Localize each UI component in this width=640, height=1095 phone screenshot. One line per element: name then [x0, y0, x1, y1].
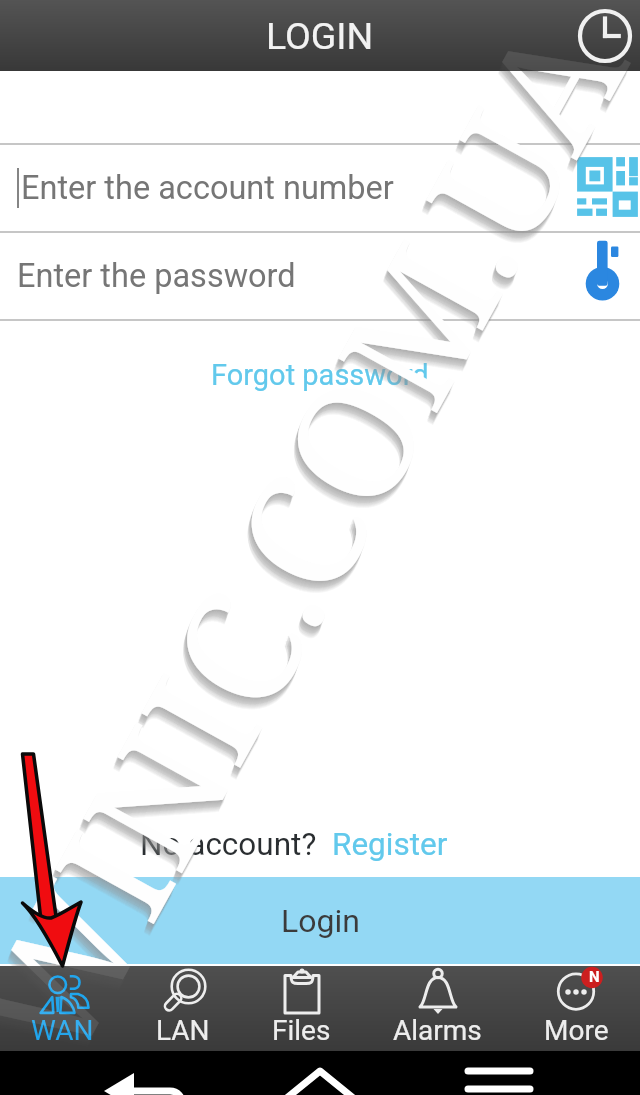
staticText: WINIC.COM.UA: [0, 0, 640, 1095]
staticText: WINIC.COM.UA: [0, 0, 640, 1095]
staticText: Enter the account number: [21, 169, 394, 207]
staticText: WINIC.COM.UA: [0, 0, 640, 1095]
staticText: WINIC.COM.UA: [0, 71, 640, 966]
staticText: WINIC.COM.UA: [0, 0, 640, 1095]
staticText: WINIC.COM.UA: [0, 0, 640, 1095]
staticText: Register: [332, 826, 448, 863]
staticText: WINIC.COM.UA: [0, 71, 640, 966]
staticText: WINIC.COM.UA: [0, 0, 640, 1095]
staticText: WINIC.COM.UA: [0, 71, 640, 966]
staticText: WINIC.COM.UA: [0, 0, 640, 1095]
staticText: Files: [272, 1014, 331, 1047]
staticText: WINIC.COM.UA: [0, 71, 640, 966]
button[interactable]: Enter the password: [0, 233, 640, 319]
button[interactable]: N: [544, 966, 609, 1051]
staticText: WINIC.COM.UA: [0, 71, 640, 966]
staticText: WINIC.COM.UA: [0, 71, 640, 966]
staticText: N: [589, 968, 600, 986]
staticText: WINIC.COM.UA: [0, 0, 640, 1095]
staticText: Login: [281, 902, 360, 940]
staticText: WINIC.COM.UA: [0, 71, 640, 966]
staticText: WINIC.COM.UA: [0, 71, 640, 966]
staticText: WAN: [31, 1014, 94, 1047]
staticText: WINIC.COM.UA: [0, 0, 640, 1095]
button[interactable]: Files: [272, 966, 331, 1051]
staticText: WINIC.COM.UA: [0, 71, 640, 966]
staticText: WINIC.COM.UA: [0, 71, 640, 966]
staticText: No account?: [140, 826, 317, 863]
button[interactable]: Forgot password: [203, 354, 437, 396]
staticText: Alarms: [393, 1014, 482, 1047]
staticText: Enter the password: [17, 257, 296, 295]
staticText: WINIC.COM.UA: [0, 0, 640, 1095]
staticText: Forgot password: [211, 358, 429, 392]
staticText: WINIC.COM.UA: [0, 0, 640, 1095]
button[interactable]: History: [574, 5, 636, 67]
staticText: WINIC.COM.UA: [0, 71, 640, 966]
button[interactable]: Alarms: [393, 966, 482, 1051]
staticText: WINIC.COM.UA: [0, 71, 640, 966]
staticText: LOGIN: [266, 14, 374, 58]
staticText: WINIC.COM.UA: [0, 0, 640, 1095]
staticText: WINIC.COM.UA: [0, 0, 640, 1095]
button[interactable]: Login: [0, 877, 640, 964]
button[interactable]: Register: [332, 826, 448, 863]
staticText: More: [544, 1014, 609, 1047]
button[interactable]: WAN: [31, 966, 94, 1051]
staticText: WINIC.COM.UA: [0, 0, 640, 1095]
staticText: WINIC.COM.UA: [0, 0, 640, 1095]
staticText: WINIC.COM.UA: [0, 71, 640, 966]
button[interactable]: Enter the account number: [0, 145, 640, 231]
staticText: WINIC.COM.UA: [0, 71, 640, 966]
staticText: LAN: [156, 1014, 210, 1047]
button[interactable]: LAN: [156, 966, 210, 1051]
staticText: WINIC.COM.UA: [0, 71, 640, 966]
